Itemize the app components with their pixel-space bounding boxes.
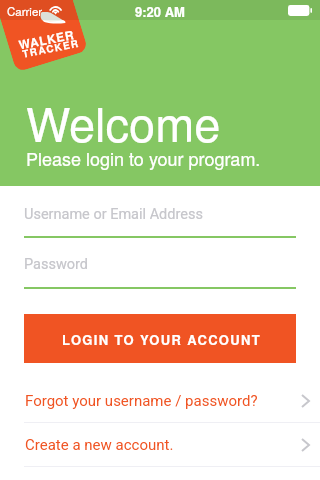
staticText: Carrier [7,3,43,19]
staticText: TRACKER [21,36,81,61]
button[interactable]: LOGIN TO YOUR ACCOUNT [24,314,296,363]
staticText: WALKER [17,25,76,52]
staticText: Welcome [26,88,221,155]
staticText: Username or Email Address [24,206,203,223]
staticText: 9:20 AM [135,2,185,21]
staticText: Please login to your program. [26,145,261,171]
button[interactable]: Create a new account. [0,423,320,467]
other: Battery [288,5,312,16]
staticText: Forgot your username / password? [25,392,258,410]
other: Walker Tracker [38,10,68,26]
other: Wi-Fi [49,4,64,15]
staticText: Password [24,256,89,273]
staticText: LOGIN TO YOUR ACCOUNT [62,330,262,349]
button[interactable]: Forgot your username / password? [0,379,320,423]
staticText: Create a new account. [25,436,174,454]
